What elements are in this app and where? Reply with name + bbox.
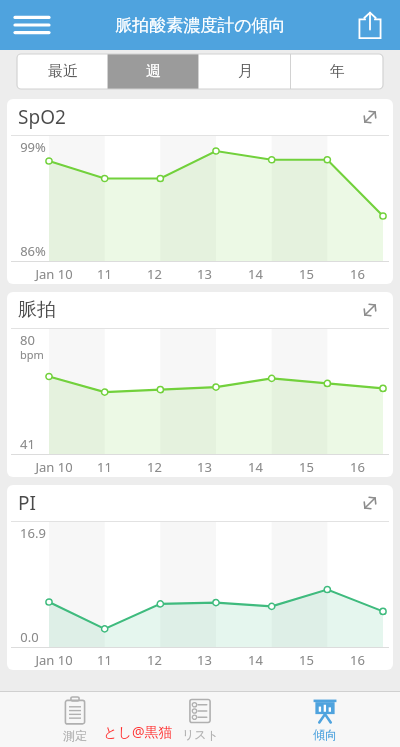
staticText: 11 [97,651,112,669]
button[interactable]: 脈拍 [7,292,393,477]
button[interactable]: リスト [150,692,250,747]
staticText: PI [18,490,36,516]
staticText: 11 [97,265,112,283]
button[interactable]: SpO2 [7,99,393,284]
button[interactable]: 傾向 [275,692,375,747]
staticText: 99% [20,138,46,156]
button[interactable]: Expand [355,488,385,518]
staticText: 月 [238,62,253,81]
staticText: 16 [350,458,365,476]
staticText: 16 [350,265,365,283]
button[interactable]: 年 [291,54,383,89]
staticText: bpm [20,347,44,362]
button[interactable]: Menu [8,1,56,49]
staticText: 11 [97,458,112,476]
staticText: 14 [248,458,263,476]
staticText: とし@黒猫 [103,722,173,741]
staticText: Jan 10 [35,458,73,476]
staticText: 12 [147,458,162,476]
button[interactable]: Expand [355,295,385,325]
staticText: Jan 10 [35,265,73,283]
staticText: 脈拍酸素濃度計の傾向 [115,15,286,36]
staticText: 13 [197,651,212,669]
staticText: 年 [330,62,345,81]
staticText: 0.0 [20,628,39,646]
staticText: 16 [350,651,365,669]
button[interactable]: Expand [355,102,385,132]
button[interactable]: 測定 [25,692,125,747]
staticText: 12 [147,265,162,283]
button[interactable]: 最近 [17,54,108,89]
staticText: 41 [20,435,35,453]
staticText: 傾向 [313,727,337,742]
staticText: 15 [299,458,314,476]
button[interactable]: PI [7,485,393,670]
staticText: 86% [20,242,46,260]
staticText: 80 [20,331,35,349]
staticText: 13 [197,265,212,283]
staticText: SpO2 [18,104,66,130]
staticText: 14 [248,265,263,283]
staticText: 16.9 [20,524,46,542]
staticText: 15 [299,651,314,669]
staticText: リスト [182,727,219,742]
button[interactable]: 月 [199,54,291,89]
staticText: 14 [248,651,263,669]
staticText: Jan 10 [35,651,73,669]
button[interactable]: Share [348,3,392,47]
staticText: 測定 [63,728,87,743]
staticText: 最近 [48,62,78,81]
staticText: 12 [147,651,162,669]
staticText: 週 [146,62,161,81]
staticText: 脈拍 [18,298,56,322]
staticText: 13 [197,458,212,476]
staticText: 15 [299,265,314,283]
button[interactable]: 週 [108,54,199,89]
